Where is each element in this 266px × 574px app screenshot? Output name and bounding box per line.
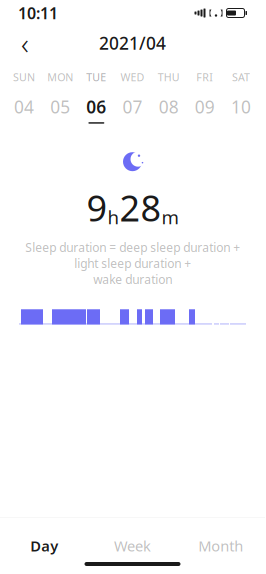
button[interactable]: 08 [151,93,187,126]
staticText: 28 [119,184,161,231]
staticText: To relax, to exercise actively and to de… [60,548,229,574]
button[interactable]: Day [0,532,88,559]
staticText: Sleep duration = deep sleep duration + l… [25,239,240,287]
staticText: 9 [86,184,107,231]
staticText: ‹ [21,23,29,62]
button[interactable]: 06 [78,93,114,126]
staticText: SUN [13,70,35,84]
button[interactable]: 04 [6,93,42,126]
staticText: 05 [50,95,70,118]
button[interactable]: Month [177,532,265,559]
staticText: 07 [122,95,142,118]
staticText: 09 [195,95,215,118]
button[interactable]: 05 [42,93,78,126]
staticText: SAT [232,70,250,84]
staticText: Day [30,536,58,555]
button[interactable]: Easy to wake up [0,520,265,574]
button[interactable]: 09 [187,93,223,126]
staticText: 04 [14,95,34,118]
staticText: 2021/04 [99,31,166,54]
staticText: 08 [159,95,179,118]
staticText: 10:11 [18,2,58,24]
staticText: Month [198,536,243,555]
staticText: TUE [86,70,106,84]
staticText: FRI [196,70,213,84]
button[interactable]: 10 [223,93,259,126]
button[interactable]: Week [88,532,177,559]
staticText: THU [158,70,180,84]
staticText: MON [47,70,73,84]
staticText: 06 [86,95,106,118]
staticText: 10 [231,95,251,118]
staticText: WED [120,70,144,84]
button[interactable]: 07 [114,93,150,126]
staticText: Week [114,536,151,555]
staticText: m [161,205,178,229]
button[interactable]: Back [8,26,42,60]
staticText: h [107,205,119,229]
